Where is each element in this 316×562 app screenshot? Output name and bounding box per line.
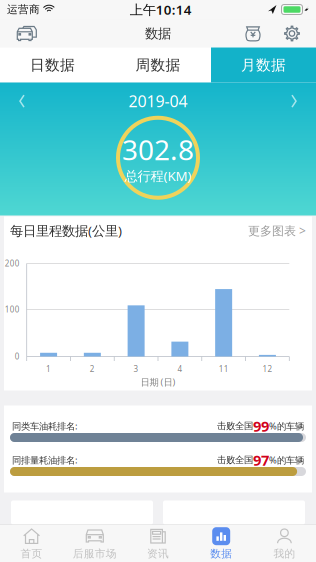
- staticText: 我的: [273, 547, 295, 560]
- button[interactable]: 数据: [190, 525, 253, 562]
- staticText: 11: [219, 364, 229, 374]
- staticText: 2: [90, 364, 95, 374]
- staticText: 12: [262, 364, 272, 374]
- staticText: 后服市场: [73, 547, 117, 560]
- button[interactable]: 日数据: [0, 47, 105, 82]
- staticText: 周数据: [135, 56, 180, 74]
- staticText: 4: [177, 364, 182, 374]
- staticText: 数据: [210, 547, 232, 560]
- button[interactable]: 周数据: [105, 47, 211, 82]
- staticText: 302.8: [122, 131, 194, 168]
- staticText: 数据: [145, 25, 171, 42]
- staticText: %的车辆: [269, 420, 304, 432]
- button[interactable]: 资讯: [126, 525, 190, 562]
- button[interactable]: 下个月: [285, 92, 303, 110]
- staticText: 2019-04: [128, 90, 187, 112]
- button[interactable]: 油耗: [238, 19, 268, 47]
- staticText: 97: [253, 450, 269, 470]
- staticText: 运营商: [7, 3, 40, 16]
- staticText: 1: [46, 364, 51, 374]
- staticText: 200: [5, 258, 20, 269]
- staticText: 月数据: [241, 56, 286, 74]
- button[interactable]: 月数据: [211, 47, 316, 82]
- button[interactable]: 后服市场: [63, 525, 126, 562]
- staticText: 0: [15, 351, 20, 362]
- staticText: 日期 (日): [140, 376, 175, 388]
- button[interactable]: 切换车辆: [10, 19, 44, 47]
- staticText: 上午10:14: [130, 1, 192, 18]
- staticText: 总行程(KM): [124, 167, 191, 185]
- staticText: 日数据: [30, 56, 75, 74]
- staticText: 100: [5, 304, 20, 315]
- staticText: 更多图表 >: [248, 222, 306, 238]
- staticText: 击败全国: [217, 420, 253, 432]
- button[interactable]: 设置: [278, 19, 306, 47]
- button[interactable]: 我的: [253, 525, 316, 562]
- button[interactable]: 更多图表 >: [248, 222, 306, 238]
- staticText: 99: [253, 416, 269, 436]
- staticText: 资讯: [147, 547, 169, 560]
- button[interactable]: 上个月: [13, 92, 31, 110]
- staticText: 每日里程数据(公里): [10, 222, 122, 239]
- staticText: %的车辆: [269, 454, 304, 466]
- staticText: 同排量耗油排名:: [12, 454, 78, 466]
- staticText: 击败全国: [217, 454, 253, 466]
- staticText: 首页: [21, 547, 43, 560]
- staticText: 同类车油耗排名:: [12, 420, 78, 432]
- button[interactable]: 首页: [0, 525, 63, 562]
- staticText: 3: [134, 364, 139, 374]
